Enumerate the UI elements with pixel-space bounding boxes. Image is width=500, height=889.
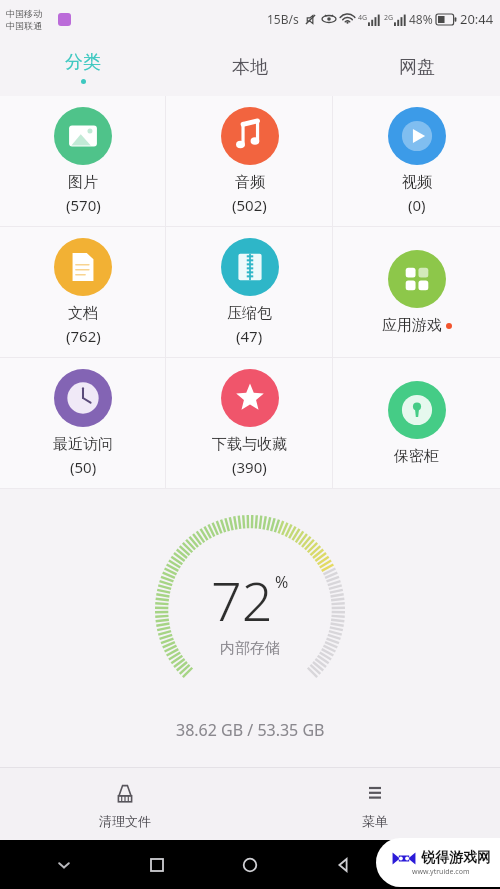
staticText: 文档 <box>68 304 98 323</box>
staticText: 视频 <box>402 173 432 192</box>
button[interactable]: 文档 <box>0 227 166 357</box>
button[interactable]: 菜单 <box>250 768 500 840</box>
staticText: 15B/s <box>267 11 299 27</box>
staticText: 中国联通 <box>6 20 42 31</box>
button[interactable]: Home <box>203 840 296 889</box>
staticText: (0) <box>408 195 426 215</box>
staticText: 图片 <box>68 173 98 192</box>
button[interactable]: Back <box>296 840 389 889</box>
staticText: (50) <box>70 457 97 477</box>
button[interactable]: Collapse <box>18 840 110 889</box>
staticText: 清理文件 <box>99 813 151 829</box>
staticText: 中国移动 <box>6 8 42 19</box>
staticText: 2G <box>384 13 394 23</box>
staticText: (502) <box>232 195 267 215</box>
button[interactable]: 压缩包 <box>166 227 333 357</box>
button[interactable]: 网盘 <box>333 38 500 96</box>
button[interactable]: 下载与收藏 <box>166 358 333 488</box>
staticText: 压缩包 <box>227 304 272 323</box>
staticText: 网盘 <box>399 56 435 79</box>
staticText: (570) <box>66 195 101 215</box>
button[interactable]: 保密柜 <box>333 358 500 488</box>
staticText: 锐得游戏网 <box>421 849 491 867</box>
staticText: www.ytruide.com <box>412 867 470 877</box>
staticText: 72 <box>211 563 273 637</box>
button[interactable]: 图片 <box>0 96 166 226</box>
staticText: 分类 <box>65 51 101 74</box>
staticText: 内部存储 <box>220 639 280 658</box>
staticText: 保密柜 <box>394 447 439 466</box>
staticText: 38.62 GB / 53.35 GB <box>176 719 325 741</box>
button[interactable]: 清理文件 <box>0 768 250 840</box>
staticText: 应用游戏 <box>382 316 442 335</box>
staticText: (390) <box>232 457 267 477</box>
button[interactable]: 分类 <box>0 38 166 96</box>
staticText: (47) <box>236 326 263 346</box>
staticText: 下载与收藏 <box>212 435 287 454</box>
staticText: 48% <box>409 11 433 27</box>
button[interactable]: Recents <box>110 840 203 889</box>
staticText: % <box>275 571 289 593</box>
button[interactable]: 最近访问 <box>0 358 166 488</box>
staticText: 音频 <box>235 173 265 192</box>
staticText: 最近访问 <box>53 435 113 454</box>
staticText: (762) <box>66 326 101 346</box>
staticText: 本地 <box>232 56 268 79</box>
staticText: 20:44 <box>460 10 494 28</box>
button[interactable]: 本地 <box>166 38 333 96</box>
button[interactable]: 音频 <box>166 96 333 226</box>
staticText: 菜单 <box>362 813 388 829</box>
staticText: 4G <box>358 13 368 23</box>
button[interactable]: 应用游戏 <box>333 227 500 357</box>
button[interactable]: 视频 <box>333 96 500 226</box>
